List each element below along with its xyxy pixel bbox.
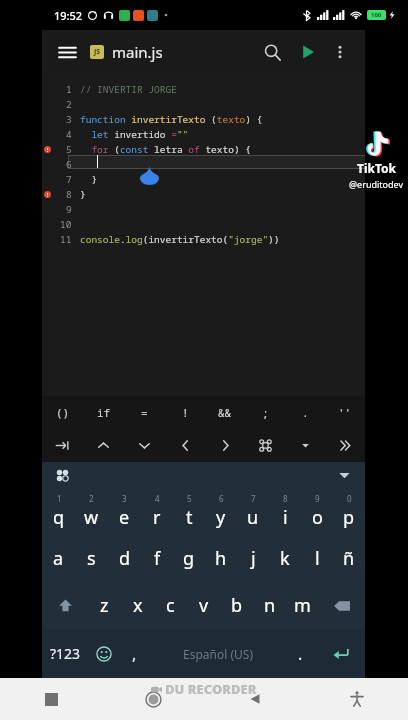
button[interactable]: Backspace [319, 582, 365, 629]
staticText: 5 [187, 493, 192, 504]
button[interactable]: Collapse [333, 464, 355, 486]
button[interactable]: ñ [333, 535, 365, 582]
staticText: a [53, 546, 64, 571]
button[interactable]: ?123 [42, 629, 88, 678]
button[interactable]: d [108, 535, 141, 582]
button[interactable]: k [269, 535, 301, 582]
button[interactable]: = [124, 396, 165, 429]
button[interactable]: Enter [316, 629, 365, 678]
staticText: if [97, 405, 111, 420]
button[interactable]: down [124, 429, 165, 462]
button[interactable]: if [83, 396, 124, 429]
staticText: 0 [347, 493, 352, 504]
button[interactable]: Emoji [88, 629, 119, 678]
button[interactable]: Search [257, 37, 287, 67]
staticText: 7 [251, 493, 256, 504]
button[interactable]: g [173, 535, 205, 582]
button[interactable]: 0 [333, 488, 365, 535]
staticText: k [280, 546, 290, 571]
staticText: d [119, 546, 131, 571]
staticText: () [56, 405, 70, 420]
staticText: x [133, 593, 143, 618]
button[interactable]: 1 [42, 488, 75, 535]
button[interactable]: 7 [237, 488, 269, 535]
staticText: 8 [283, 493, 288, 504]
staticText: 5 [66, 143, 72, 156]
staticText: 3 [122, 493, 127, 504]
staticText: ; [262, 405, 269, 420]
staticText: s [87, 546, 96, 571]
button[interactable]: c [154, 582, 187, 629]
button[interactable]: b [220, 582, 253, 629]
button[interactable]: 3 [108, 488, 141, 535]
staticText: && [218, 405, 232, 420]
button[interactable]: Accessibility [306, 678, 408, 720]
staticText: ! [182, 405, 189, 420]
button[interactable]: ! [165, 396, 205, 429]
button[interactable]: f [141, 535, 173, 582]
button[interactable]: up [83, 429, 124, 462]
button[interactable]: z [88, 582, 121, 629]
staticText: 2 [66, 98, 72, 111]
staticText: 7 [66, 173, 72, 186]
staticText: ?123 [50, 644, 81, 663]
button[interactable]: h [205, 535, 237, 582]
button[interactable]: More options [327, 39, 353, 65]
staticText: 4 [155, 493, 160, 504]
staticText: ñ [343, 546, 355, 571]
staticText: p [343, 505, 355, 530]
button[interactable]: a [42, 535, 75, 582]
button[interactable]: tab [42, 429, 83, 462]
button[interactable]: v [187, 582, 220, 629]
staticText: e [119, 505, 130, 530]
button[interactable]: . [285, 629, 316, 678]
button[interactable]: Menu [54, 39, 80, 65]
button[interactable]: l [301, 535, 333, 582]
button[interactable]: , [119, 629, 150, 678]
button[interactable]: Run [293, 37, 323, 67]
button[interactable]: . [285, 396, 325, 429]
button[interactable]: '' [325, 396, 365, 429]
button[interactable]: left [165, 429, 205, 462]
staticText: f [154, 546, 161, 571]
staticText: 2 [89, 493, 94, 504]
button[interactable]: Back [204, 678, 306, 720]
staticText: TikTok [357, 160, 396, 176]
staticText: let invertido ="" [80, 128, 189, 141]
staticText: 19:52 [54, 8, 83, 23]
staticText: 4 [66, 128, 72, 141]
button[interactable]: 9 [301, 488, 333, 535]
button[interactable]: right [205, 429, 245, 462]
button[interactable]: cmd [245, 429, 285, 462]
staticText: 1 [66, 83, 72, 96]
button[interactable]: x [121, 582, 154, 629]
staticText: DU RECORDER [165, 680, 257, 698]
staticText: JS [94, 47, 101, 57]
button[interactable]: 8 [269, 488, 301, 535]
button[interactable]: Home [102, 678, 204, 720]
button[interactable]: dbl [325, 429, 365, 462]
staticText: 3 [66, 113, 72, 126]
button[interactable]: && [205, 396, 245, 429]
staticText: 1 [57, 493, 62, 504]
button[interactable]: m [286, 582, 319, 629]
button[interactable]: 5 [173, 488, 205, 535]
button[interactable]: Keyboard settings [52, 465, 72, 485]
button[interactable]: Shift [42, 582, 88, 629]
button[interactable]: n [253, 582, 286, 629]
button[interactable]: Recents [0, 678, 102, 720]
button[interactable]: ; [245, 396, 285, 429]
staticText: function invertirTexto (texto) { [80, 113, 263, 126]
staticText: y [216, 505, 226, 530]
staticText: b [231, 593, 243, 618]
staticText: 11 [60, 233, 72, 246]
button[interactable]: tri [285, 429, 325, 462]
button[interactable]: Español (US) [150, 629, 285, 678]
button[interactable]: 6 [205, 488, 237, 535]
button[interactable]: () [42, 396, 83, 429]
staticText: . [302, 405, 309, 420]
button[interactable]: 4 [141, 488, 173, 535]
button[interactable]: 2 [75, 488, 108, 535]
button[interactable]: s [75, 535, 108, 582]
button[interactable]: j [237, 535, 269, 582]
